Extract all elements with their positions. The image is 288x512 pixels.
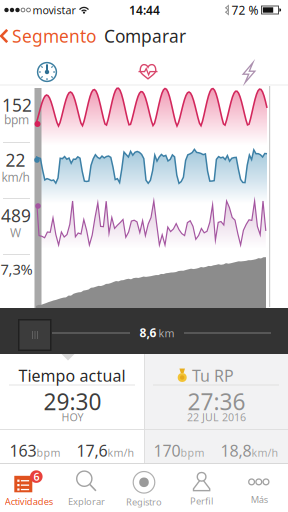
button[interactable]: Tiempo actual	[7, 364, 137, 386]
staticText: km	[158, 326, 174, 340]
staticText: km/h	[107, 445, 134, 460]
staticText: HOY	[61, 410, 83, 424]
staticText: 29:30	[43, 386, 101, 416]
button[interactable]: 6	[0, 466, 60, 512]
staticText: 170	[153, 440, 180, 461]
staticText: 22	[5, 148, 25, 171]
button[interactable]: Velocidad	[36, 61, 58, 83]
staticText: Explorar	[68, 495, 105, 508]
staticText: 14:44	[129, 2, 160, 18]
staticText: km/h	[1, 169, 29, 185]
staticText: 6	[33, 470, 39, 484]
staticText: 489	[1, 204, 31, 227]
staticText: Comparar	[104, 24, 186, 47]
button[interactable]: Arrastrar posición	[18, 319, 51, 351]
staticText: 152	[2, 93, 32, 116]
button[interactable]: Atrás: Segmento	[0, 24, 96, 47]
button[interactable]: Registro	[115, 466, 172, 512]
staticText: 8,6	[139, 324, 156, 340]
staticText: Actividades	[5, 495, 53, 508]
staticText: Perfil	[190, 495, 213, 507]
staticText: 72 %	[231, 2, 258, 18]
staticText: Tu RP	[192, 365, 234, 386]
button[interactable]: Más	[231, 469, 288, 512]
staticText: 27:36	[187, 386, 245, 416]
staticText: Tiempo actual	[18, 365, 125, 386]
staticText: Segmento	[12, 24, 96, 47]
staticText: Más	[251, 493, 268, 506]
button[interactable]: Frecuencia cardiaca	[139, 62, 157, 80]
staticText: Registro	[126, 496, 162, 508]
staticText: 18,8	[220, 440, 251, 461]
staticText: 7,3%	[0, 259, 32, 279]
button[interactable]: Explorar	[58, 466, 115, 512]
staticText: bpm	[4, 111, 29, 127]
staticText: 17,6	[76, 440, 107, 461]
staticText: km/h	[251, 445, 278, 460]
button[interactable]: Perfil	[173, 466, 230, 512]
staticText: movistar	[32, 3, 75, 17]
button[interactable]: Tu RP	[140, 364, 270, 386]
button[interactable]: Potencia	[240, 62, 257, 83]
staticText: W	[10, 224, 21, 240]
staticText: bpm	[36, 445, 60, 460]
staticText: 22 JUL 2016	[187, 410, 246, 424]
staticText: 163	[9, 440, 36, 461]
staticText: bpm	[180, 445, 204, 460]
